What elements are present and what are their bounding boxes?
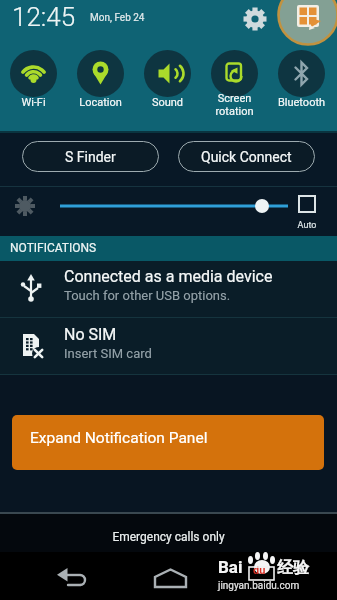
button[interactable] — [150, 565, 192, 593]
button[interactable]: Auto — [292, 190, 328, 234]
button[interactable] — [52, 560, 98, 592]
button[interactable]: S Finder — [22, 141, 159, 172]
staticText: NOTIFICATIONS — [10, 241, 97, 255]
staticText: Emergency calls only — [0, 530, 337, 544]
button[interactable] — [0, 318, 337, 375]
staticText: 12:45 — [12, 2, 76, 32]
staticText: Quick Connect — [201, 149, 292, 165]
button[interactable] — [271, 0, 337, 52]
staticText: Auto — [292, 220, 322, 231]
staticText: Wi-Fi — [0, 96, 67, 109]
button[interactable]: Expand Notification Panel — [12, 415, 324, 470]
staticText: Mon, Feb 24 — [90, 12, 145, 24]
button[interactable] — [0, 261, 337, 318]
button[interactable] — [10, 50, 57, 97]
button[interactable]: Quick Connect — [178, 141, 315, 172]
staticText: Touch for other USB options. — [64, 288, 231, 303]
button[interactable] — [144, 50, 191, 97]
staticText: du — [253, 564, 266, 577]
staticText: Bluetooth — [268, 96, 335, 109]
staticText: 经验 — [277, 558, 309, 578]
staticText: Screen rotation — [201, 92, 268, 118]
staticText: Expand Notification Panel — [30, 429, 208, 447]
staticText: Bai — [218, 557, 243, 577]
staticText: Location — [67, 96, 134, 109]
staticText: No SIM — [64, 325, 117, 344]
staticText: Connected as a media device — [64, 267, 273, 286]
staticText: Sound — [134, 96, 201, 109]
button[interactable] — [240, 5, 270, 35]
button[interactable] — [77, 50, 124, 97]
button[interactable] — [211, 50, 258, 97]
button[interactable] — [278, 50, 325, 97]
button[interactable] — [8, 189, 42, 223]
staticText: Insert SIM card — [64, 346, 152, 361]
staticText: S Finder — [65, 149, 116, 165]
staticText: jingyan.baidu.com — [218, 580, 300, 592]
